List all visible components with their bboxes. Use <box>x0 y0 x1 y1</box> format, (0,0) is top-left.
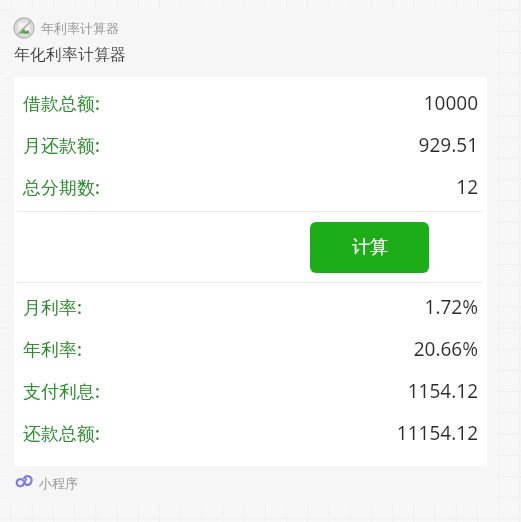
staticText: 月还款额: <box>23 133 100 158</box>
staticText: 年化利率计算器 <box>14 45 126 65</box>
staticText: 借款总额: <box>23 91 100 116</box>
other: App icon <box>14 18 34 38</box>
button[interactable]: 还款总额: <box>14 412 487 454</box>
staticText: 计算 <box>352 236 388 259</box>
button[interactable]: 总分期数: <box>14 166 487 208</box>
button[interactable]: 月利率: <box>14 286 487 328</box>
staticText: 11154.12 <box>104 420 478 446</box>
staticText: 10000 <box>104 90 478 116</box>
button[interactable]: 支付利息: <box>14 370 487 412</box>
staticText: 年利率: <box>23 337 82 362</box>
staticText: 支付利息: <box>23 379 100 404</box>
staticText: 年利率计算器 <box>41 20 119 36</box>
staticText: 12 <box>104 174 478 200</box>
other: Mini Program <box>16 474 33 491</box>
staticText: 1.72% <box>86 294 478 320</box>
staticText: 929.51 <box>104 132 478 158</box>
staticText: 20.66% <box>86 336 478 362</box>
button[interactable]: Mini Program <box>16 474 78 491</box>
button[interactable]: 借款总额: <box>14 82 487 124</box>
button[interactable]: 计算 <box>310 222 429 273</box>
staticText: 1154.12 <box>104 378 478 404</box>
staticText: 小程序 <box>39 475 78 491</box>
staticText: 总分期数: <box>23 175 100 200</box>
button[interactable]: 年利率: <box>14 328 487 370</box>
staticText: 月利率: <box>23 295 82 320</box>
staticText: 还款总额: <box>23 421 100 446</box>
button[interactable]: 月还款额: <box>14 124 487 166</box>
button[interactable]: App icon <box>14 18 119 38</box>
